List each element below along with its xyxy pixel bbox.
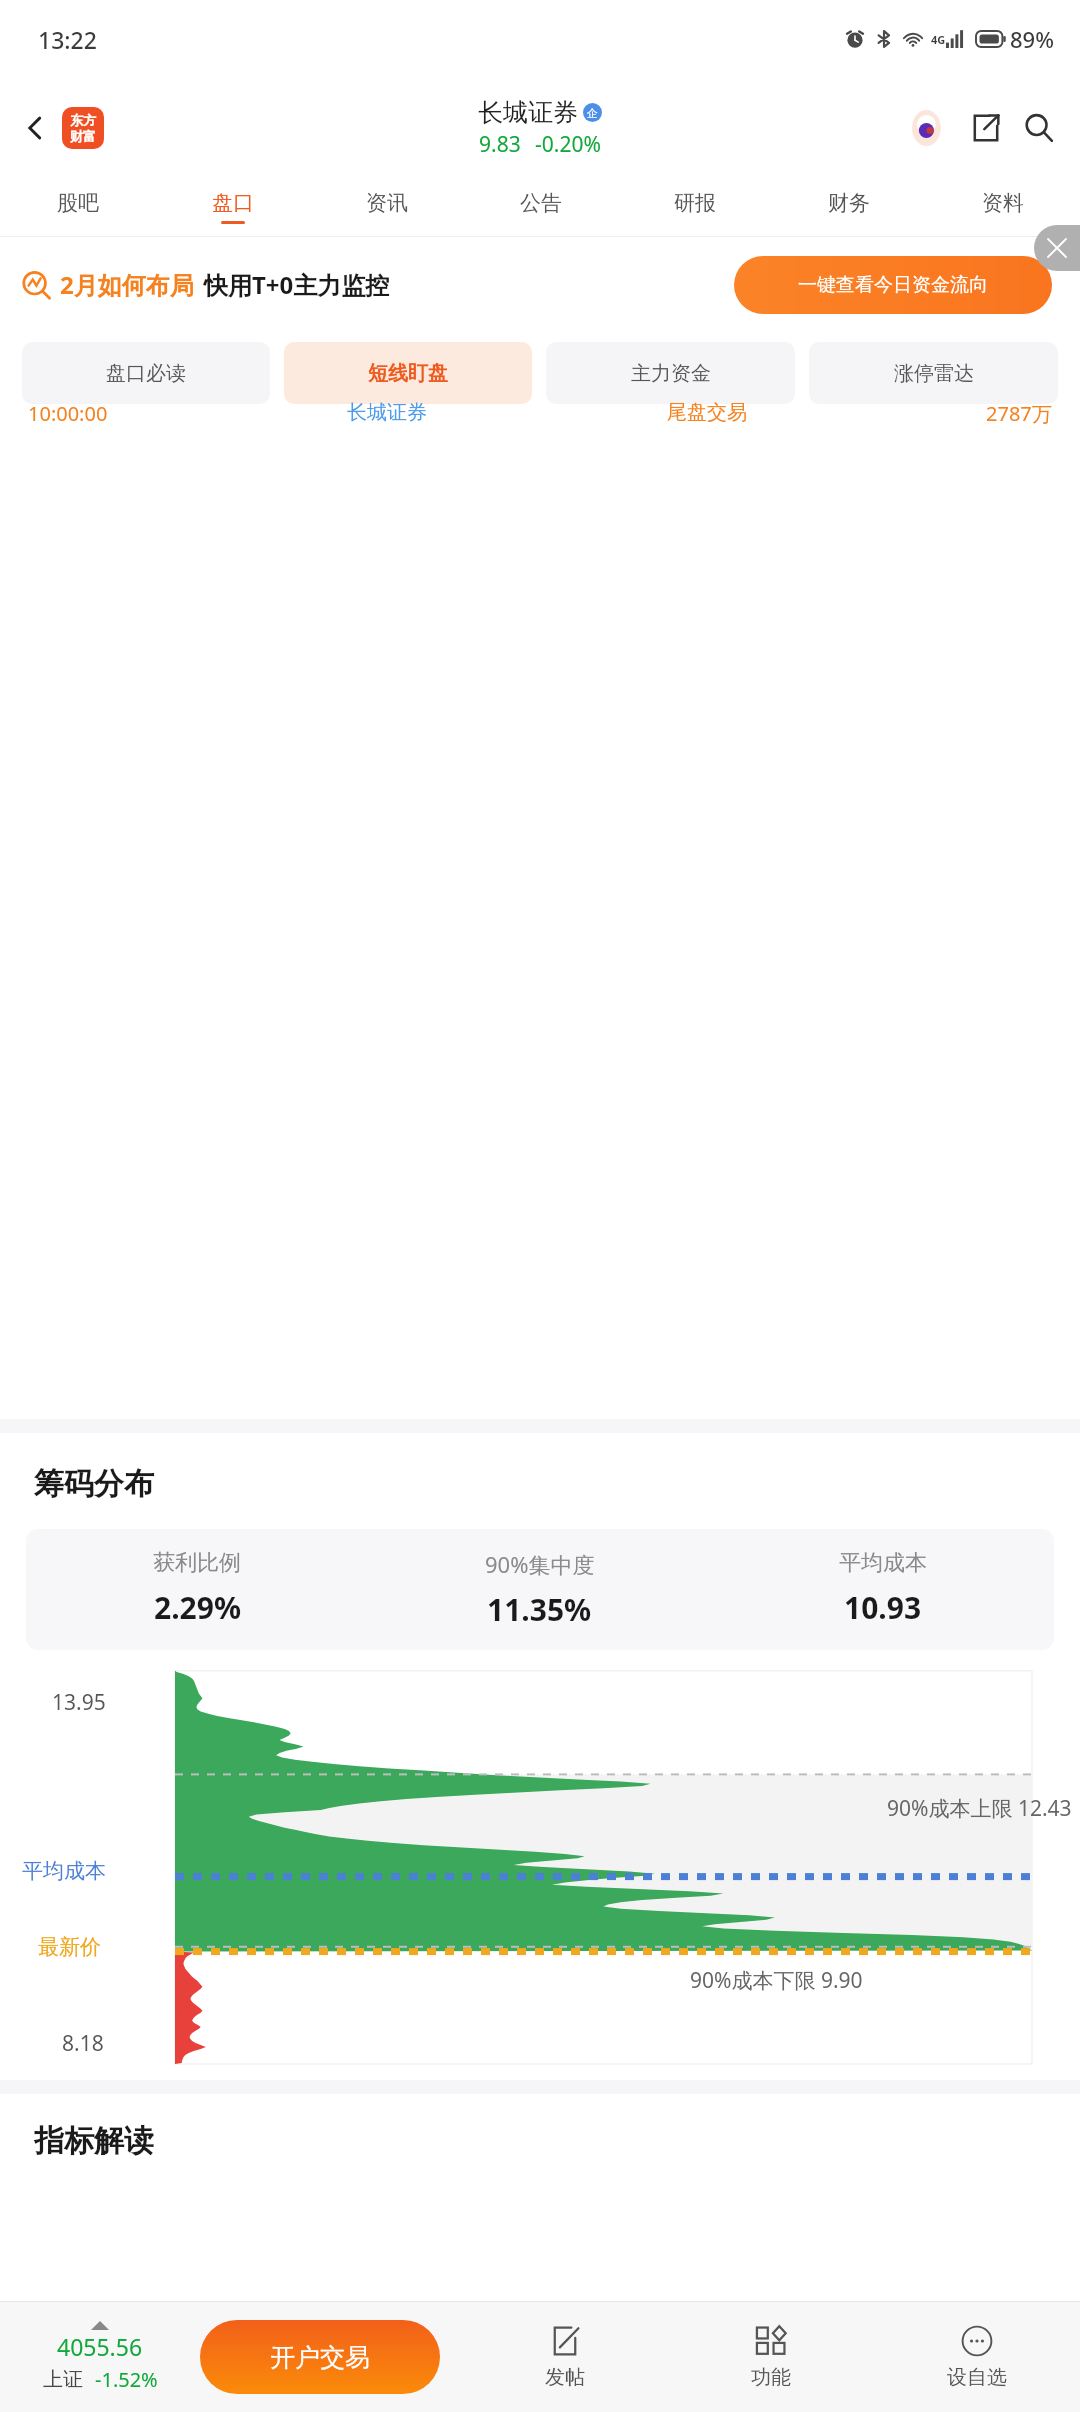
staticText: 股吧 — [57, 190, 99, 216]
staticText: 研报 — [674, 190, 716, 216]
staticText: -0.20% — [535, 130, 601, 159]
button[interactable]: 涨停雷达 — [809, 342, 1058, 404]
button[interactable]: 发帖 — [462, 2302, 668, 2412]
staticText: 13:22 — [38, 24, 97, 55]
staticText: 东方 — [70, 112, 96, 128]
staticText: 2.29% — [154, 1587, 241, 1628]
staticText: 快用T+0主力监控 — [204, 268, 390, 301]
staticText: 筹码分布 — [34, 1465, 154, 1503]
staticText: 主力资金 — [631, 361, 711, 386]
staticText: 13.95 — [52, 1688, 106, 1717]
staticText: 8.18 — [62, 2029, 104, 2058]
staticText: 90%集中度 — [485, 1549, 595, 1579]
staticText: 89% — [1010, 24, 1054, 54]
staticText: 一键查看今日资金流向 — [798, 273, 988, 297]
button[interactable]: 获利比例 — [26, 1549, 1054, 1630]
button[interactable]: 开户交易 — [200, 2320, 440, 2394]
staticText: 2月如何布局 — [60, 268, 194, 301]
staticText: 盘口必读 — [106, 361, 186, 386]
button[interactable]: 资料 — [926, 178, 1080, 236]
staticText: 财务 — [828, 190, 870, 216]
button[interactable]: 一键查看今日资金流向 — [734, 256, 1052, 314]
button[interactable]: 股吧 — [0, 178, 155, 236]
staticText: -1.52% — [95, 2366, 158, 2393]
staticText: 盘口 — [212, 190, 254, 216]
staticText: 4055.56 — [57, 2331, 143, 2362]
button[interactable]: 公告 — [464, 178, 618, 236]
button[interactable]: 资讯 — [310, 178, 464, 236]
staticText: 上证 — [43, 2367, 83, 2392]
staticText: 获利比例 — [153, 1549, 241, 1577]
staticText: 发帖 — [545, 2365, 585, 2390]
staticText: 指标解读 — [34, 2122, 154, 2160]
button[interactable]: Search — [1018, 107, 1060, 149]
staticText: 10:00:00 — [28, 400, 108, 427]
button[interactable]: 财务 — [772, 178, 926, 236]
staticText: 平均成本 — [22, 1858, 106, 1884]
staticText: 短线盯盘 — [368, 361, 448, 386]
staticText: 企 — [587, 106, 598, 120]
staticText: 开户交易 — [270, 2342, 370, 2373]
staticText: 90%成本上限 12.43 — [887, 1794, 1072, 1823]
staticText: 公告 — [520, 190, 562, 216]
button[interactable]: 2月如何布局 — [22, 268, 390, 301]
staticText: 平均成本 — [839, 1549, 927, 1577]
staticText: 9.83 — [479, 130, 521, 159]
staticText: 财富 — [70, 128, 96, 144]
staticText: 4G — [931, 32, 946, 47]
button[interactable]: 盘口 — [155, 178, 310, 236]
staticText: 尾盘交易 — [667, 400, 747, 425]
button[interactable]: 设自选 — [874, 2302, 1080, 2412]
staticText: 2787万 — [986, 400, 1052, 427]
staticText: 资料 — [982, 190, 1024, 216]
staticText: 90%成本下限 9.90 — [690, 1966, 863, 1995]
staticText: 11.35% — [487, 1589, 592, 1630]
staticText: 10.93 — [844, 1587, 922, 1628]
staticText: 长城证券 — [478, 97, 578, 128]
staticText: 资讯 — [366, 190, 408, 216]
button[interactable]: 长城证券 — [478, 97, 602, 159]
button[interactable]: 短线盯盘 — [284, 342, 532, 404]
button[interactable]: Assistant — [910, 108, 950, 148]
button[interactable]: Close ad — [1034, 225, 1080, 271]
button[interactable]: 功能 — [668, 2302, 874, 2412]
staticText: 长城证券 — [347, 400, 427, 425]
button[interactable]: 研报 — [618, 178, 772, 236]
button[interactable]: 盘口必读 — [22, 342, 270, 404]
staticText: 涨停雷达 — [894, 361, 974, 386]
staticText: 功能 — [751, 2365, 791, 2390]
button[interactable]: 主力资金 — [546, 342, 795, 404]
button[interactable]: Share — [966, 108, 1006, 148]
staticText: 最新价 — [38, 1934, 101, 1960]
button[interactable]: 4055.56 — [0, 2302, 200, 2412]
button[interactable]: Back — [14, 99, 112, 157]
staticText: 设自选 — [947, 2365, 1007, 2390]
